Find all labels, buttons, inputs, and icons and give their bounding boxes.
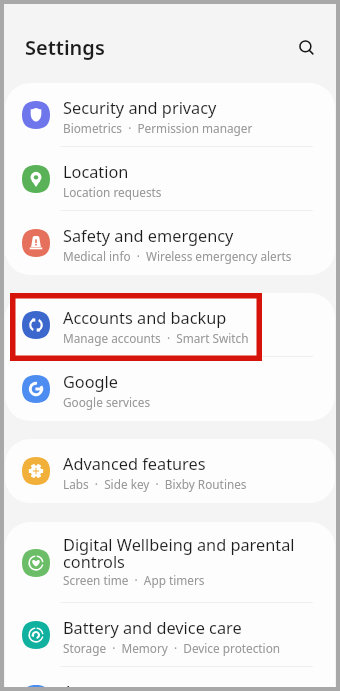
staticText: Safety and emergency xyxy=(63,225,234,247)
button[interactable]: Accounts and backup xyxy=(5,293,335,357)
staticText: Medical info · Wireless emergency alerts xyxy=(63,248,292,264)
staticText: Manage accounts · Smart Switch xyxy=(63,330,249,346)
staticText: Labs · Side key · Bixby Routines xyxy=(63,476,247,492)
staticText: Location requests xyxy=(63,184,162,200)
staticText: Advanced features xyxy=(63,453,206,475)
staticText: Google xyxy=(63,371,119,393)
staticText: Google services xyxy=(63,394,151,410)
staticText: Location xyxy=(63,161,129,183)
staticText: Security and privacy xyxy=(63,97,217,119)
staticText: Accounts and backup xyxy=(63,307,227,329)
button[interactable]: Location xyxy=(5,147,335,211)
staticText: Apps xyxy=(63,681,102,687)
staticText: Screen time · App timers xyxy=(63,572,205,588)
staticText: Storage · Memory · Device protection xyxy=(63,640,281,656)
staticText: Biometrics · Permission manager xyxy=(63,120,253,136)
button[interactable]: Safety and emergency xyxy=(5,211,335,275)
staticText: Settings xyxy=(25,34,105,61)
staticText: Battery and device care xyxy=(63,617,242,639)
button[interactable]: Digital Wellbeing and parental xyxy=(5,522,335,603)
button[interactable]: Search xyxy=(295,36,325,66)
button[interactable]: Apps xyxy=(5,667,335,687)
button[interactable]: Google xyxy=(5,357,335,421)
button[interactable]: Advanced features xyxy=(5,439,335,503)
staticText: controls xyxy=(63,551,125,573)
button[interactable]: Battery and device care xyxy=(5,603,335,667)
staticText: Digital Wellbeing and parental xyxy=(63,534,295,556)
button[interactable]: Security and privacy xyxy=(5,83,335,147)
